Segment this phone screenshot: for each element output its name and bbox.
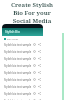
button[interactable]: Copy [32,49,37,54]
button[interactable]: Stylish bio text sample [2,90,43,97]
staticText: Create Stylish [0,1,64,9]
staticText: Social Media [0,17,64,25]
button[interactable]: Copy [32,98,37,100]
button[interactable]: Share [37,91,42,96]
button[interactable]: Copy [32,56,37,61]
button[interactable]: Stylish Bio [5,30,20,34]
staticText: Stylish bio text sample [4,92,32,96]
button[interactable]: Stylish bio text sample [2,41,43,48]
button[interactable]: Copy [32,91,37,96]
button[interactable]: Share [37,77,42,82]
button[interactable]: Copy [32,84,37,89]
button[interactable]: Copy [32,77,37,82]
staticText: Stylish bio text sample [4,78,32,82]
button[interactable]: Stylish bio text sample [2,69,43,76]
button[interactable]: Share [37,63,42,68]
staticText: Stylish bio text sample [4,57,32,61]
staticText: Stylish bio text sample [4,64,32,68]
staticText: Stylish bio text sample [4,50,32,54]
button[interactable]: Stylish bio text sample [2,55,43,62]
button[interactable]: Stylish bio text sample [2,48,43,55]
staticText: Stylish bio text sample [4,85,32,89]
button[interactable]: Share [37,98,42,100]
button[interactable]: Share [37,70,42,75]
staticText: Stylish bio text sample [4,43,32,47]
button[interactable]: Share [37,84,42,89]
button[interactable]: Stylish bio text sample [2,97,43,100]
button[interactable]: Share [37,49,42,54]
button[interactable]: Stylish bio text sample [2,83,43,90]
button[interactable]: Share [37,42,42,47]
staticText: Stylish bio text sample [4,71,32,75]
button[interactable]: Share [37,56,42,61]
staticText: Stylish bio text sample [4,99,32,100]
staticText: Bio For your [0,9,64,17]
button[interactable]: Stylish bio text sample [2,76,43,83]
staticText: Bio Styles [7,37,19,40]
button[interactable]: Copy [32,70,37,75]
button[interactable]: Stylish bio text sample [2,62,43,69]
button[interactable]: Copy [32,63,37,68]
button[interactable]: Copy [32,42,37,47]
